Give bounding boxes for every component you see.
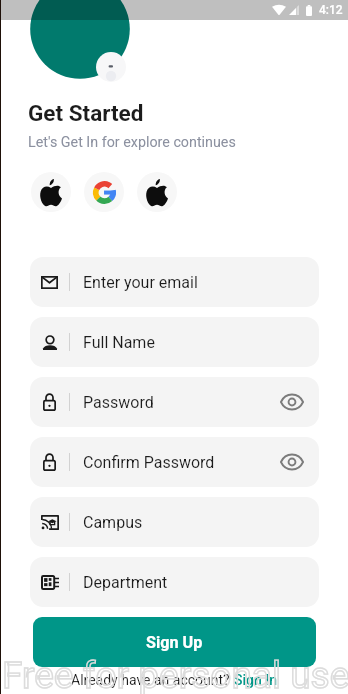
- button[interactable]: Show password: [277, 387, 307, 417]
- button[interactable]: Sign in with Apple: [137, 172, 177, 212]
- staticText: Get Started: [28, 100, 144, 126]
- staticText: Confirm Password: [83, 453, 215, 472]
- staticText: Password: [83, 393, 154, 412]
- button[interactable]: Campus: [30, 497, 319, 547]
- button[interactable]: Full Name: [30, 317, 319, 367]
- staticText: Sign Up: [146, 633, 203, 652]
- button[interactable]: Sign In: [234, 672, 278, 688]
- staticText: Campus: [83, 513, 143, 532]
- staticText: Let's Get In for explore continues: [28, 134, 236, 151]
- button[interactable]: Sign in with Apple: [31, 172, 71, 212]
- staticText: Enter your email: [83, 273, 198, 292]
- button[interactable]: Sign in with Google: [84, 172, 124, 212]
- button[interactable]: Department: [30, 557, 319, 607]
- staticText: Department: [83, 573, 168, 592]
- staticText: Full Name: [83, 333, 155, 352]
- staticText: Free for personal use: [2, 654, 348, 694]
- button[interactable]: Sign Up: [33, 617, 316, 667]
- button[interactable]: Confirm Password: [30, 437, 319, 487]
- button[interactable]: Password: [30, 377, 319, 427]
- staticText: Already have an account?: [71, 672, 234, 688]
- button[interactable]: Enter your email: [30, 257, 319, 307]
- staticText: 4:12: [319, 3, 343, 17]
- button[interactable]: Show password: [277, 447, 307, 477]
